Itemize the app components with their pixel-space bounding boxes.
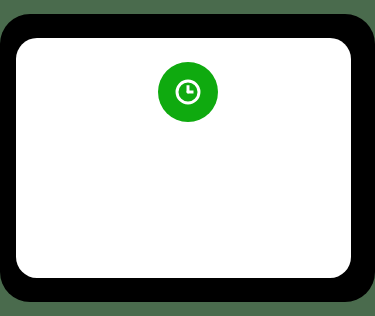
button[interactable]: Clock — [158, 62, 218, 122]
